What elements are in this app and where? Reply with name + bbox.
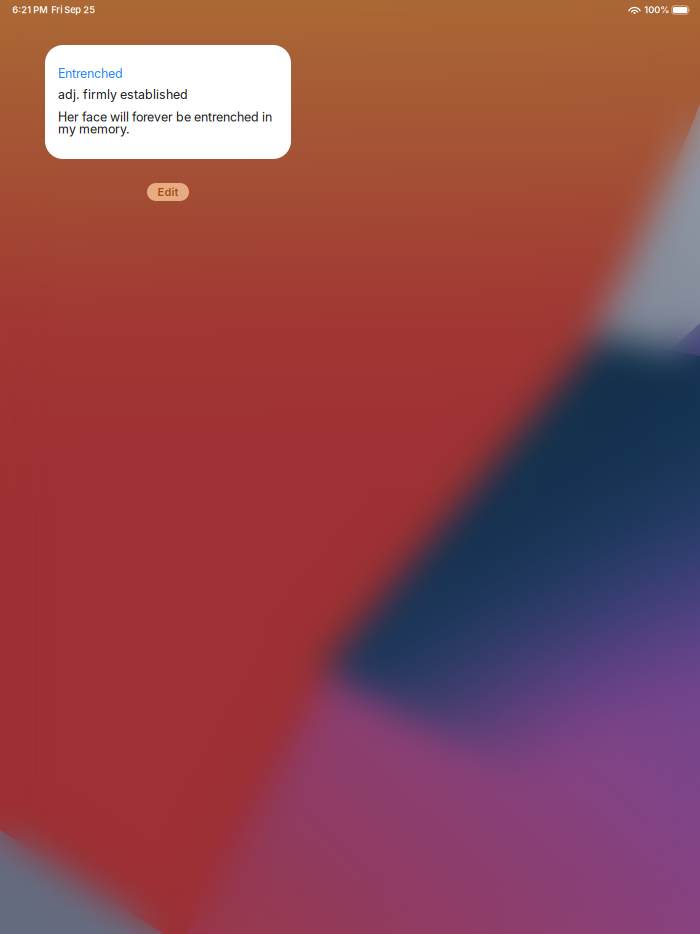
staticText: 6:21 PM (12, 4, 47, 15)
staticText: Edit (157, 185, 178, 199)
button[interactable]: Edit (147, 183, 189, 201)
staticText: Fri Sep 25 (51, 4, 95, 15)
staticText: 100% (644, 4, 669, 15)
staticText: Entrenched (58, 66, 123, 81)
staticText: adj. firmly established (58, 87, 188, 102)
staticText: Her face will forever be entrenched in m… (58, 111, 272, 135)
